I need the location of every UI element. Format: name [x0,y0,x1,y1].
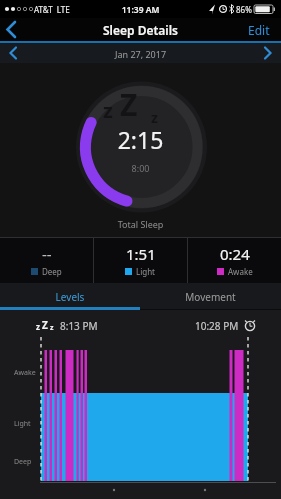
staticText: 86% [236,4,252,15]
staticText: Awake [228,266,253,277]
staticText: Light [14,419,31,429]
staticText: -- [42,244,52,264]
staticText: Edit [248,22,270,38]
staticText: Total Sleep [0,218,281,230]
staticText: Awake [14,368,36,378]
staticText: 8:00 [0,162,281,174]
staticText: Light [136,266,156,277]
staticText: 10:28 PM [195,319,239,333]
button[interactable] [255,43,281,63]
button[interactable]: Edit [237,18,281,41]
staticText: Z [42,318,48,332]
staticText: Deep [42,266,62,277]
staticText: 0:24 [220,244,250,264]
staticText: Levels [0,290,140,304]
staticText: 1:51 [126,244,156,264]
staticText: z [103,97,113,124]
staticText: Deep [14,457,32,467]
staticText: Movement [140,290,281,304]
staticText: z [151,108,158,127]
staticText: 11:39 AM [0,4,281,16]
staticText: 2:15 [0,124,281,155]
button[interactable] [0,18,26,41]
staticText: 8:13 PM [60,319,98,333]
button[interactable]: -- [0,238,93,283]
staticText: z [36,321,40,332]
staticText: Sleep Details [0,22,281,38]
staticText: z [50,323,54,333]
staticText: Jan 27, 2017 [0,48,281,60]
button[interactable]: 1:51 [94,238,187,283]
button[interactable] [0,43,26,63]
staticText: Z [120,84,138,125]
button[interactable]: 0:24 [188,238,281,283]
button[interactable]: Movement [140,283,281,310]
staticText: AT&T LTE [34,4,70,15]
button[interactable]: Levels [0,283,140,310]
